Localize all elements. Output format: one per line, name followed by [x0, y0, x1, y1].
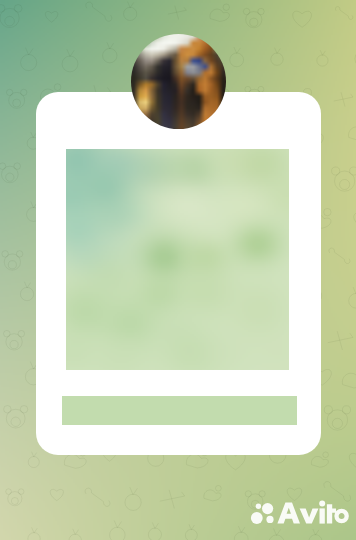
button[interactable]: Seller avatar	[131, 34, 226, 129]
button[interactable]: Avito	[249, 501, 347, 526]
button[interactable]	[36, 92, 321, 455]
